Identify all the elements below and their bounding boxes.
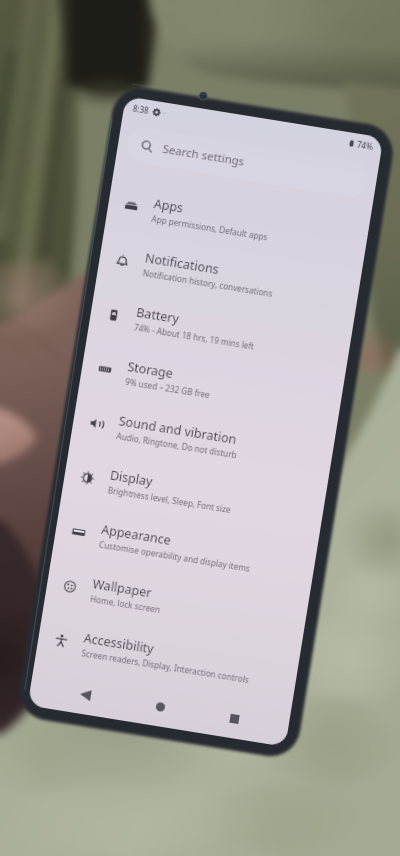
button[interactable]: Wallpaper	[43, 555, 309, 651]
staticText: Brightness level, Sleep, Font size	[107, 484, 232, 515]
button[interactable]: Appearance	[52, 501, 318, 597]
staticText: Notifications	[144, 249, 221, 278]
staticText: 74% - About 18 hrs, 19 mins left	[133, 321, 255, 352]
button[interactable]: Recent apps	[210, 695, 258, 741]
staticText: Display	[109, 467, 154, 490]
staticText: Battery	[135, 304, 180, 327]
staticText: App permissions, Default apps	[151, 213, 269, 242]
staticText: Search settings	[162, 141, 246, 170]
staticText: Accessibility	[83, 629, 155, 658]
staticText: Storage	[126, 358, 174, 382]
button[interactable]: Notifications	[95, 229, 362, 325]
staticText: Sound and vibration	[118, 412, 238, 448]
button[interactable]: Storage	[78, 338, 344, 434]
staticText: Notification history, conversations	[142, 267, 274, 299]
button[interactable]: Search settings	[124, 125, 370, 199]
button[interactable]: Accessibility	[34, 609, 301, 705]
staticText: Apps	[153, 195, 185, 217]
button[interactable]: Back	[61, 671, 109, 717]
staticText: Screen readers, Display, Interaction con…	[81, 647, 250, 685]
button[interactable]: Display	[60, 447, 327, 542]
staticText: Appearance	[100, 521, 173, 549]
staticText: Audio, Ringtone, Do not disturb	[116, 430, 238, 460]
staticText: Customise operability and display items	[98, 539, 251, 574]
staticText: 9% used – 232 GB free	[124, 376, 211, 400]
button[interactable]: Sound and vibration	[69, 392, 336, 488]
button[interactable]: Home	[136, 683, 184, 729]
button[interactable]: Battery	[87, 284, 353, 379]
staticText: Home, lock screen	[89, 593, 161, 615]
staticText: Wallpaper	[91, 575, 153, 601]
staticText: 8:38	[132, 102, 150, 116]
button[interactable]: Apps	[104, 175, 371, 271]
staticText: 74%	[356, 139, 374, 152]
